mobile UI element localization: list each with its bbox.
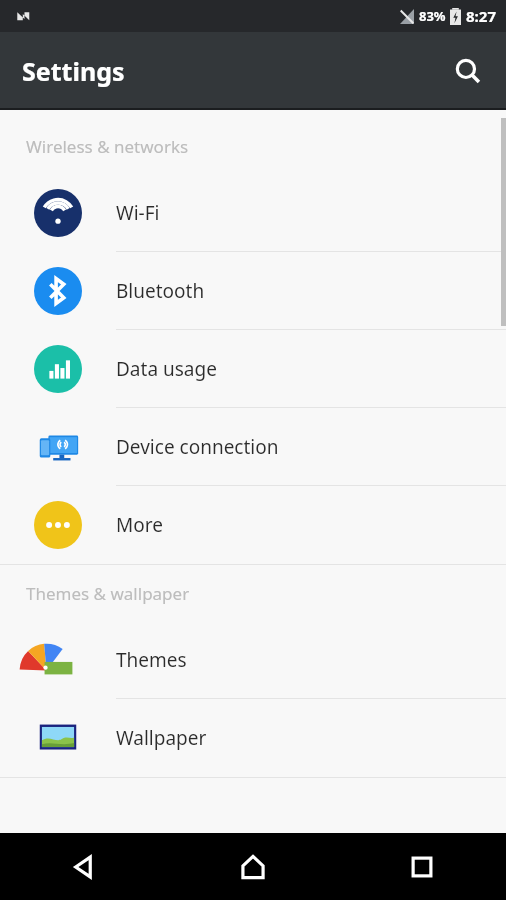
button[interactable]: Wi-Fi: [0, 174, 506, 252]
button[interactable]: Themes: [0, 621, 506, 699]
button[interactable]: Search: [444, 47, 492, 95]
staticText: More: [116, 512, 163, 538]
staticText: 8:27: [466, 6, 496, 26]
staticText: 83%: [419, 7, 446, 25]
staticText: Wallpaper: [116, 725, 207, 751]
staticText: Device connection: [116, 434, 279, 460]
staticText: Wi-Fi: [116, 200, 160, 226]
button[interactable]: Bluetooth: [0, 252, 506, 330]
staticText: Themes: [116, 647, 187, 673]
staticText: Bluetooth: [116, 278, 205, 304]
button[interactable]: More: [0, 486, 506, 564]
button[interactable]: Back: [0, 833, 168, 900]
staticText: Settings: [22, 54, 125, 88]
staticText: Data usage: [116, 356, 217, 382]
button[interactable]: Device connection: [0, 408, 506, 486]
button[interactable]: Home: [168, 833, 337, 900]
staticText: Wireless & networks: [26, 135, 189, 158]
button[interactable]: Data usage: [0, 330, 506, 408]
staticText: Themes & wallpaper: [26, 582, 190, 605]
button[interactable]: Recent apps: [337, 833, 506, 900]
button[interactable]: Wallpaper: [0, 699, 506, 777]
